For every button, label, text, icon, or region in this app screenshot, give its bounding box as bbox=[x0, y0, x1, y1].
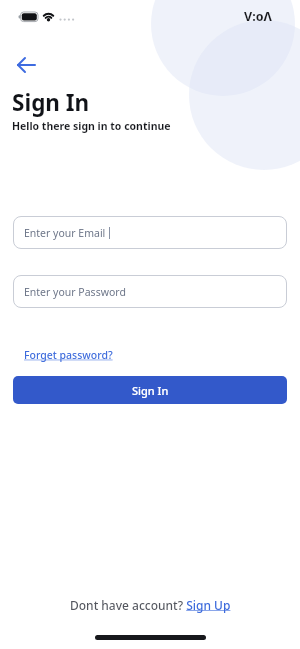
staticText: Enter your Email bbox=[24, 226, 106, 240]
staticText: Enter your Password bbox=[24, 285, 126, 299]
button[interactable]: Enter your Email bbox=[13, 216, 287, 249]
button[interactable]: Enter your Password bbox=[13, 275, 287, 308]
button[interactable]: Dont have account? Sign Up bbox=[0, 597, 300, 613]
staticText: Hello there sign in to continue bbox=[12, 119, 171, 133]
button[interactable]: Forget password? bbox=[24, 348, 113, 362]
staticText: Sign In bbox=[12, 87, 90, 118]
staticText: Dont have account? Sign Up bbox=[70, 597, 231, 613]
staticText: Sign In bbox=[132, 383, 169, 398]
staticText: V:oΛ bbox=[244, 8, 272, 25]
button[interactable]: Sign In bbox=[13, 376, 287, 404]
button[interactable] bbox=[10, 49, 42, 81]
